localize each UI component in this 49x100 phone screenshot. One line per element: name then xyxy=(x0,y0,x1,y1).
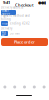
staticText: ●●▮ xyxy=(38,0,46,5)
button[interactable]: Tab xyxy=(29,83,39,91)
button[interactable]: Tab xyxy=(0,83,10,91)
staticText: Checkout xyxy=(15,2,34,8)
staticText: ending 4242 xyxy=(10,22,30,25)
staticText: Delivery address xyxy=(1,6,23,9)
staticText: 9:41 xyxy=(3,0,10,5)
button[interactable]: ASAP xyxy=(1,31,8,36)
button[interactable]: Tab xyxy=(39,83,49,91)
staticText: 221B Baker Street, London xyxy=(2,5,13,20)
staticText: 30 min xyxy=(10,32,20,35)
button[interactable]: Place order xyxy=(1,38,48,46)
staticText: Place order xyxy=(14,39,35,45)
staticText: ASAP xyxy=(2,30,6,37)
button[interactable]: 221B Baker Street, London xyxy=(1,10,16,15)
button[interactable]: Visa xyxy=(1,21,8,26)
button[interactable]: Tab xyxy=(20,83,29,91)
staticText: Delivery xyxy=(1,27,12,30)
staticText: Payment method and billing xyxy=(1,14,30,21)
button[interactable]: Tab xyxy=(10,83,20,91)
staticText: Visa xyxy=(2,22,7,25)
